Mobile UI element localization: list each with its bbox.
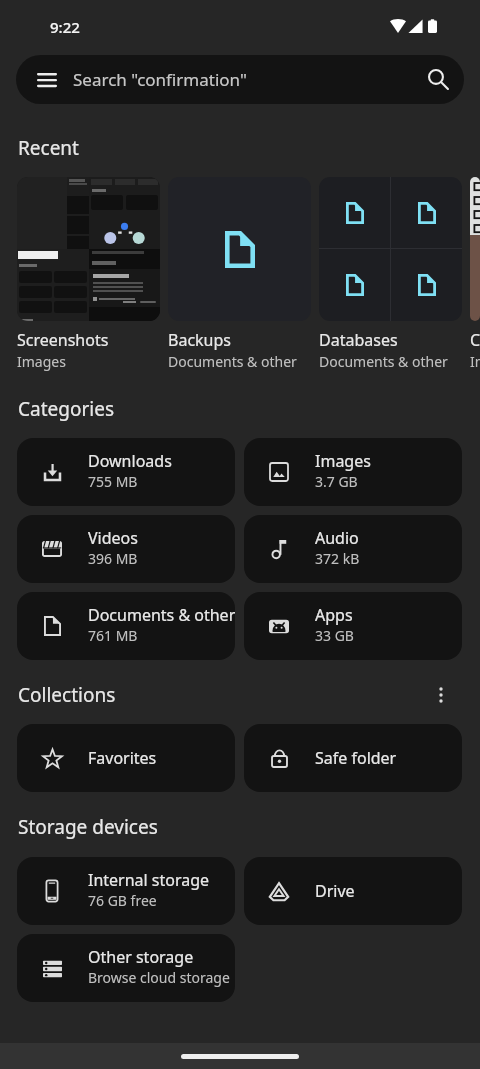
staticText: Databases: [319, 329, 398, 351]
button[interactable]: Downloads: [17, 438, 235, 506]
other: Open navigation menu: [37, 73, 57, 87]
button[interactable]: Images: [244, 438, 462, 506]
staticText: Images: [470, 352, 480, 371]
other: Search: [428, 69, 449, 90]
staticText: Apps: [315, 604, 353, 626]
staticText: Other storage: [88, 946, 194, 968]
button[interactable]: Other storage: [17, 934, 235, 1002]
staticText: Drive: [315, 880, 355, 902]
staticText: 76 GB free: [88, 891, 157, 910]
button[interactable]: Apps: [244, 592, 462, 660]
staticText: Recent: [18, 135, 79, 161]
staticText: Safe folder: [315, 747, 397, 769]
staticText: Categories: [18, 396, 114, 422]
staticText: Images: [315, 450, 371, 472]
button[interactable]: Audio: [244, 515, 462, 583]
button[interactable]: Camera: [470, 177, 480, 371]
button[interactable]: Open navigation menu: [16, 55, 464, 104]
button[interactable]: Drive: [244, 857, 462, 925]
button[interactable]: More options: [421, 682, 461, 708]
staticText: Browse cloud storage: [88, 968, 230, 987]
staticText: 9:22: [50, 17, 80, 37]
button[interactable]: Databases: [319, 177, 462, 371]
staticText: 33 GB: [315, 626, 354, 645]
staticText: 3.7 GB: [315, 472, 358, 491]
staticText: 761 MB: [88, 626, 138, 645]
staticText: Screenshots: [17, 329, 109, 351]
button[interactable]: Favorites: [17, 724, 235, 792]
staticText: Internal storage: [88, 869, 210, 891]
staticText: Favorites: [88, 747, 157, 769]
staticText: Search "confirmation": [73, 68, 247, 91]
staticText: Downloads: [88, 450, 172, 472]
button[interactable]: Documents & other: [17, 592, 235, 660]
staticText: Documents & other: [319, 352, 448, 371]
staticText: Documents & other: [88, 604, 235, 626]
button[interactable]: Videos: [17, 515, 235, 583]
staticText: Videos: [88, 527, 138, 549]
button[interactable]: Safe folder: [244, 724, 462, 792]
staticText: 372 kB: [315, 549, 360, 568]
staticText: Audio: [315, 527, 359, 549]
staticText: Camera: [470, 329, 480, 351]
staticText: Backups: [168, 329, 231, 351]
staticText: Collections: [18, 682, 116, 708]
staticText: Storage devices: [18, 814, 158, 840]
staticText: Images: [17, 352, 66, 371]
staticText: 396 MB: [88, 549, 138, 568]
staticText: Documents & other: [168, 352, 297, 371]
button[interactable]: Screenshots: [17, 177, 160, 371]
staticText: 755 MB: [88, 472, 138, 491]
button[interactable]: Internal storage: [17, 857, 235, 925]
button[interactable]: Backups: [168, 177, 311, 371]
